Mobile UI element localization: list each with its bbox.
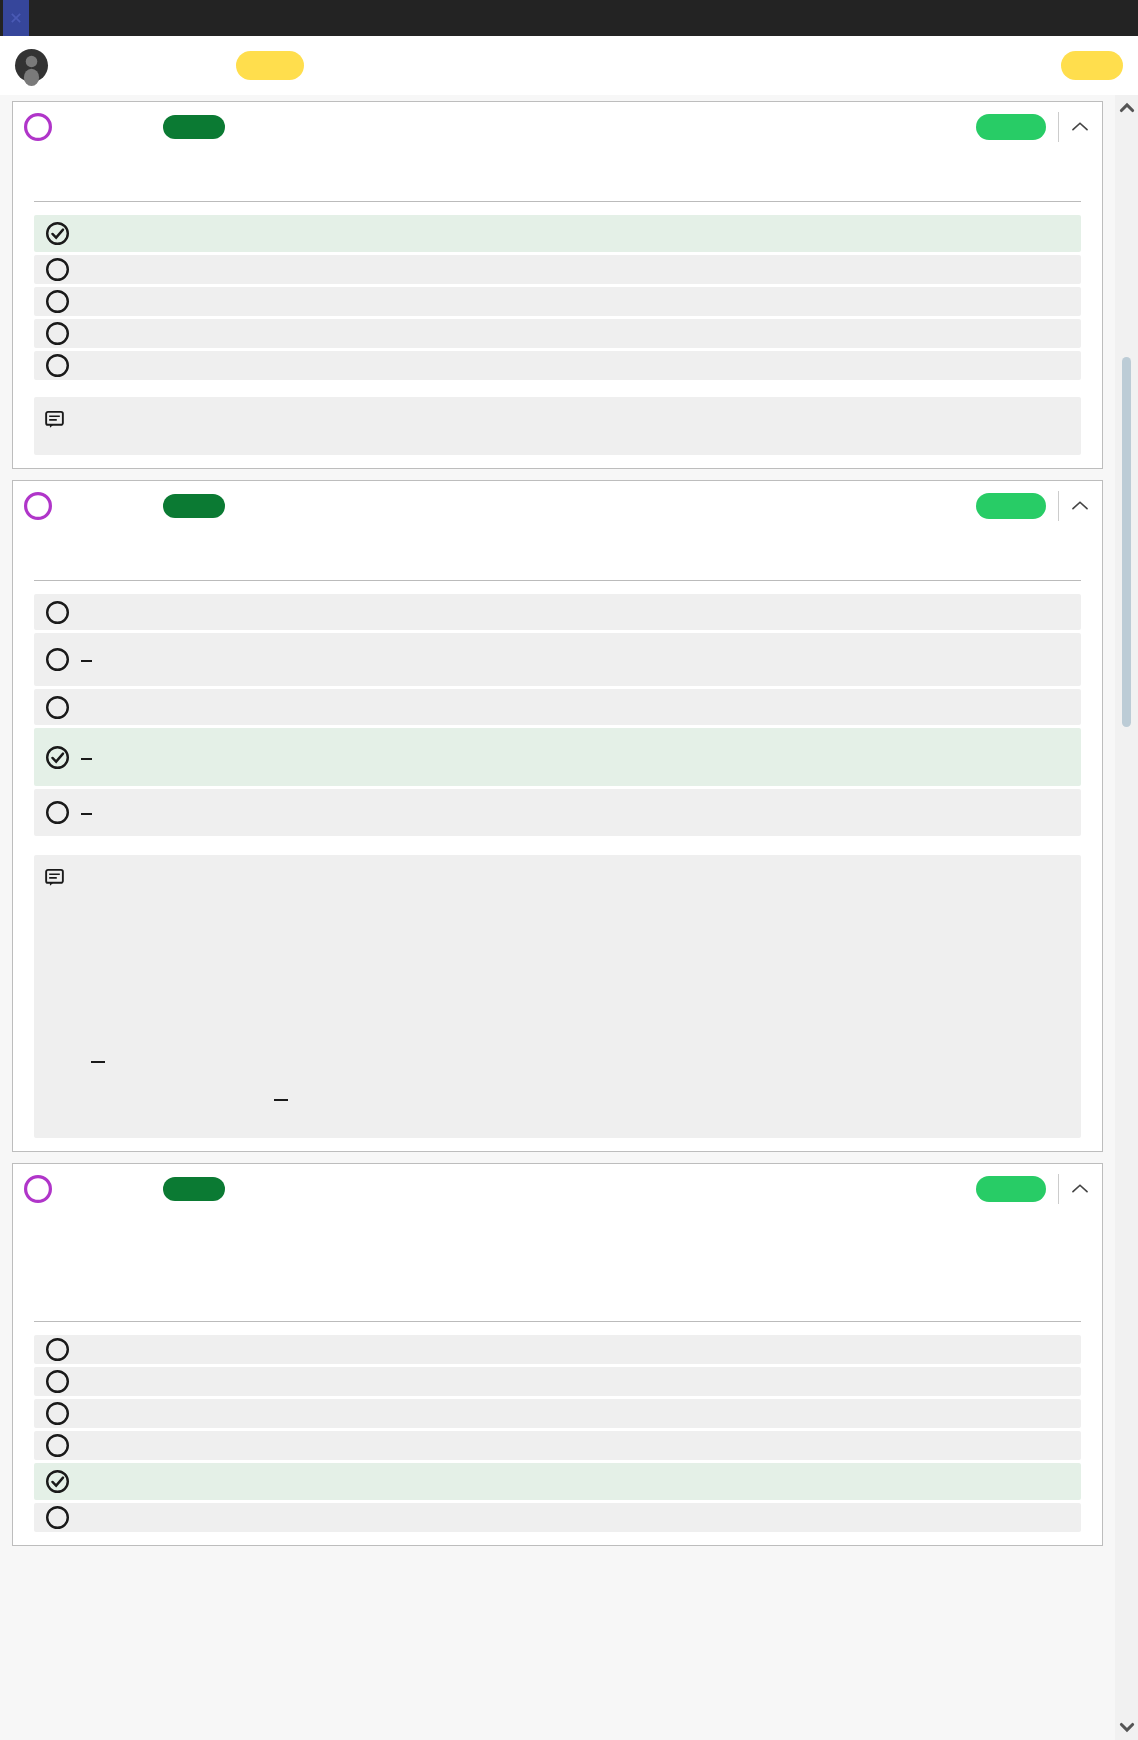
button[interactable] bbox=[34, 594, 1081, 630]
button[interactable]: Comment bbox=[34, 855, 1081, 1138]
button[interactable] bbox=[34, 1431, 1081, 1460]
button[interactable] bbox=[34, 351, 1081, 380]
button[interactable]: Collapse bbox=[1069, 116, 1091, 138]
button[interactable] bbox=[163, 1177, 225, 1201]
button[interactable] bbox=[163, 494, 225, 518]
button[interactable]: Close bbox=[3, 0, 29, 36]
button[interactable] bbox=[34, 728, 1081, 786]
button[interactable] bbox=[34, 689, 1081, 725]
button[interactable]: Collapse bbox=[1069, 495, 1091, 517]
button[interactable] bbox=[163, 115, 225, 139]
button[interactable] bbox=[34, 287, 1081, 316]
button[interactable]: Comment bbox=[34, 397, 1081, 455]
button[interactable] bbox=[34, 319, 1081, 348]
button[interactable] bbox=[236, 51, 304, 80]
button[interactable] bbox=[34, 1503, 1081, 1532]
other: Comment bbox=[45, 868, 64, 887]
other: Comment bbox=[45, 410, 64, 429]
button[interactable] bbox=[976, 493, 1046, 519]
other: Question status bbox=[24, 1175, 52, 1203]
button[interactable]: Scroll up bbox=[1118, 99, 1136, 117]
button[interactable] bbox=[34, 215, 1081, 252]
button[interactable] bbox=[34, 1463, 1081, 1500]
button[interactable]: Account bbox=[15, 49, 48, 82]
button[interactable] bbox=[1122, 357, 1131, 727]
button[interactable] bbox=[34, 789, 1081, 836]
button[interactable] bbox=[976, 114, 1046, 140]
button[interactable] bbox=[976, 1176, 1046, 1202]
button[interactable] bbox=[34, 255, 1081, 284]
other: Question status bbox=[24, 113, 52, 141]
button[interactable] bbox=[34, 633, 1081, 686]
button[interactable]: Collapse bbox=[1069, 1178, 1091, 1200]
button[interactable] bbox=[34, 1399, 1081, 1428]
button[interactable]: Scroll down bbox=[1118, 1718, 1136, 1736]
button[interactable] bbox=[34, 1335, 1081, 1364]
button[interactable] bbox=[1061, 51, 1123, 80]
other: Question status bbox=[24, 492, 52, 520]
button[interactable] bbox=[34, 1367, 1081, 1396]
